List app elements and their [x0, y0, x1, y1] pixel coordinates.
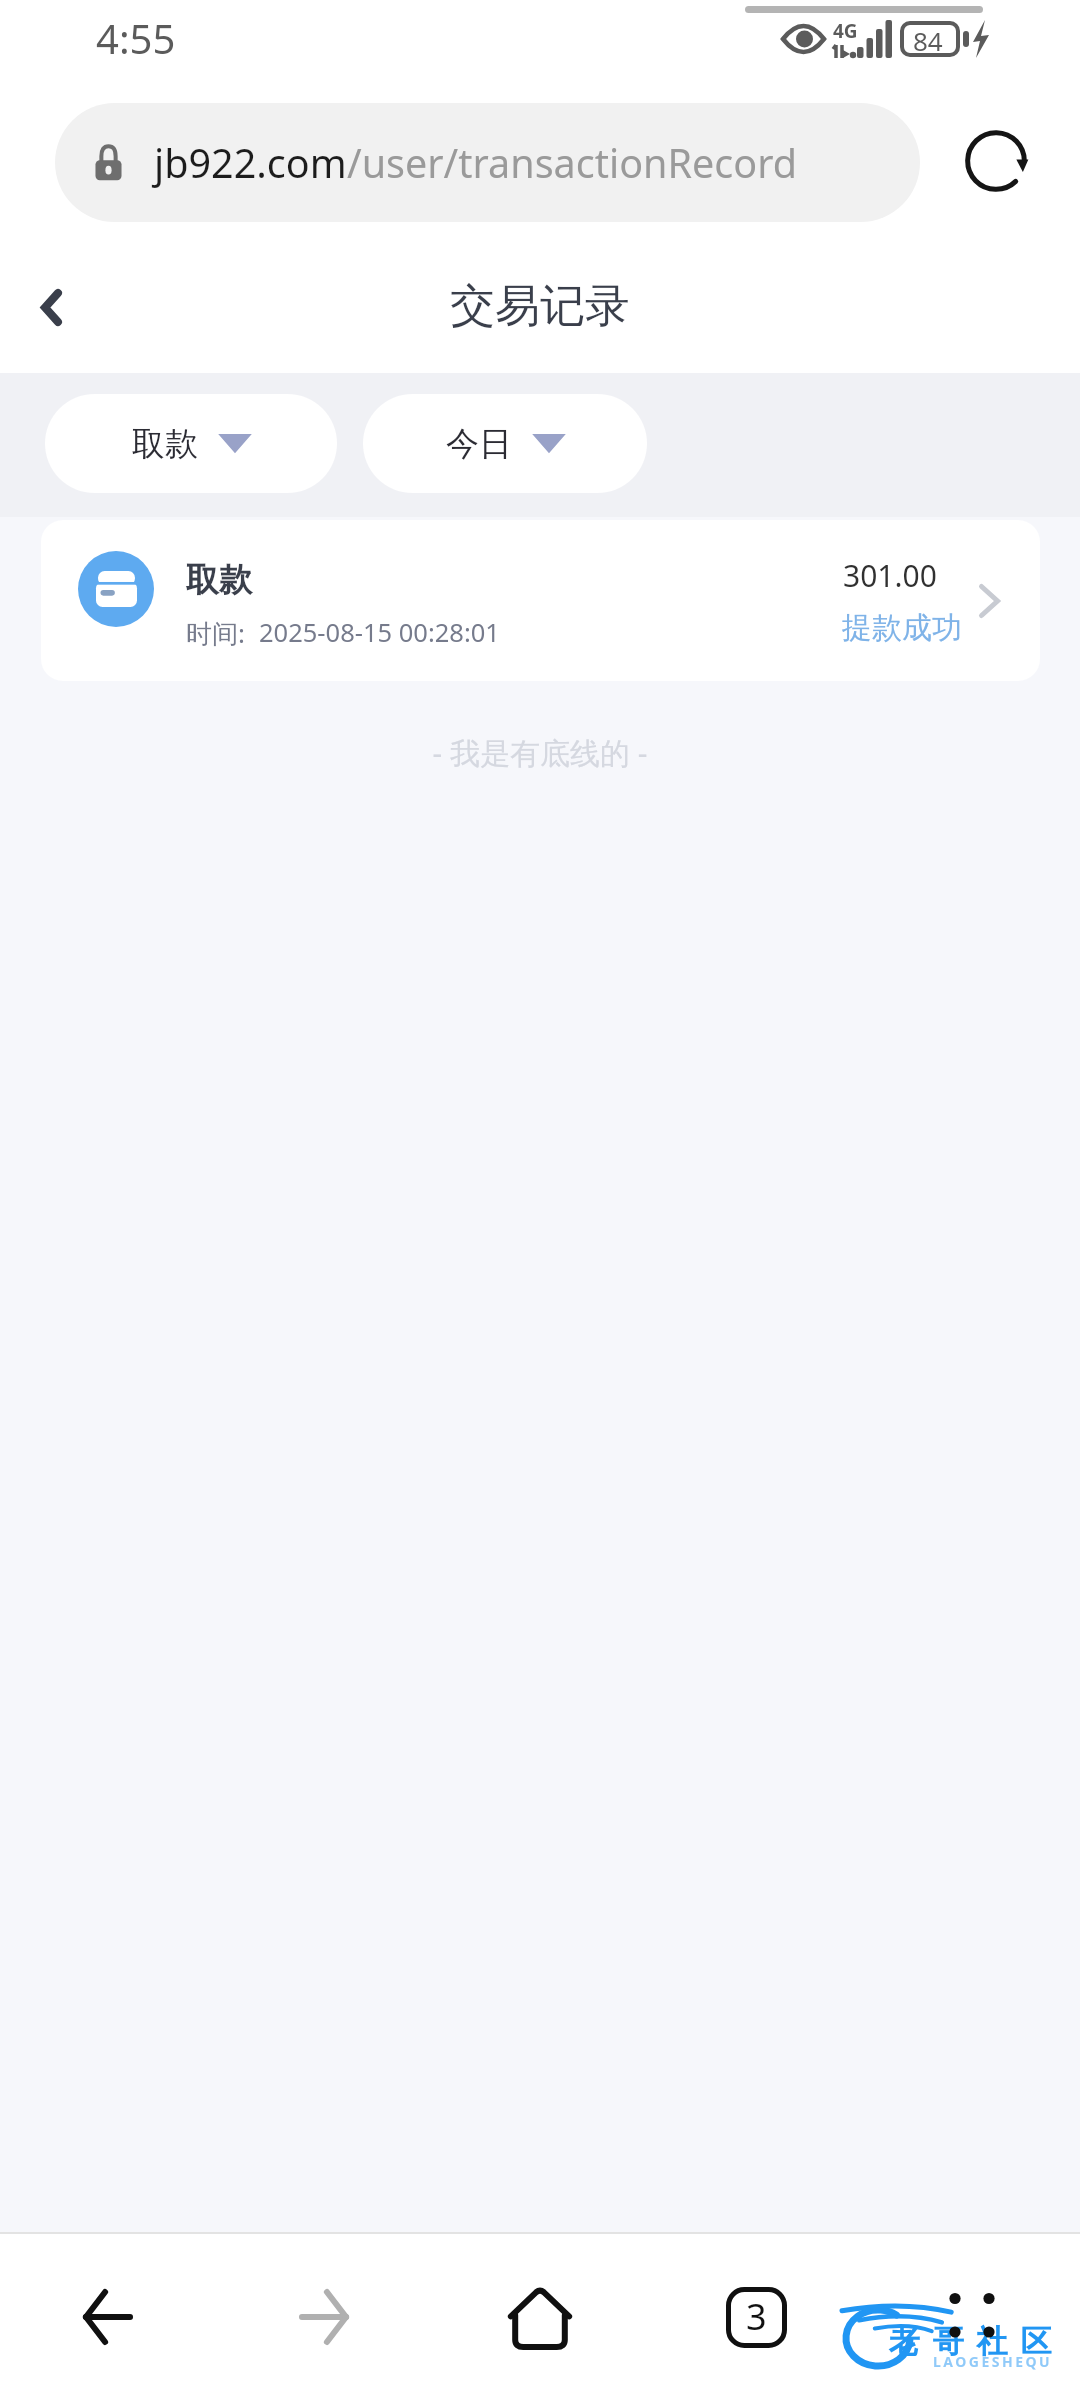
- button[interactable]: Forward: [216, 2234, 432, 2400]
- staticText: 4:55: [96, 11, 176, 65]
- button[interactable]: 取款: [41, 520, 1040, 681]
- button[interactable]: Menu: [940, 2285, 1004, 2349]
- staticText: 今日: [446, 423, 512, 465]
- staticText: jb922.com: [154, 136, 347, 190]
- staticText: 时间:: [186, 615, 245, 651]
- staticText: 2025-08-15 00:28:01: [259, 615, 500, 650]
- staticText: 4G: [833, 18, 858, 44]
- staticText: 301.00: [843, 555, 937, 596]
- staticText: 老哥社区: [882, 2322, 1058, 2361]
- staticText: 提款成功: [842, 609, 962, 647]
- button[interactable]: Home: [432, 2234, 648, 2400]
- staticText: 取款: [132, 423, 198, 465]
- button[interactable]: 取款: [45, 394, 337, 493]
- button[interactable]: Tabs: [648, 2234, 864, 2400]
- button[interactable]: 今日: [363, 394, 647, 493]
- staticText: - 我是有底线的 -: [0, 732, 1080, 773]
- staticText: /user/transactionRecord: [347, 136, 797, 190]
- button[interactable]: jb922.com: [55, 103, 920, 222]
- staticText: 84: [913, 23, 943, 58]
- button[interactable]: Refresh: [951, 116, 1041, 206]
- staticText: 交易记录: [450, 278, 630, 335]
- button[interactable]: Back: [5, 261, 97, 353]
- staticText: LAOGESHEQU: [933, 2352, 1053, 2371]
- staticText: 取款: [186, 559, 252, 601]
- staticText: 3: [746, 2292, 767, 2341]
- button[interactable]: Back: [0, 2234, 216, 2400]
